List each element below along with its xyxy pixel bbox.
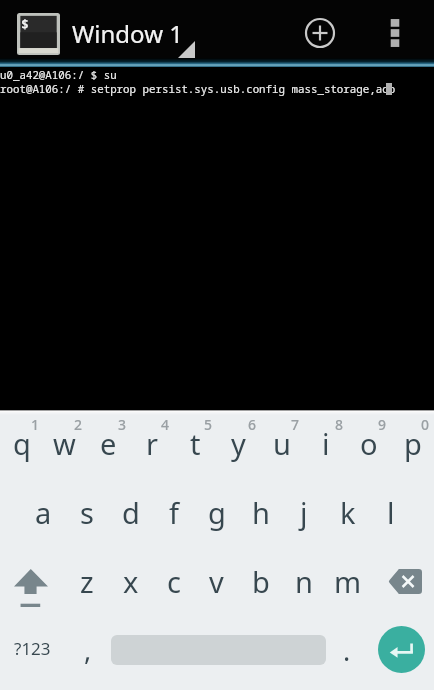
button[interactable]: b [239,554,282,609]
staticText: s [80,493,94,532]
button[interactable]: s [65,485,108,540]
staticText: a [35,493,52,532]
button[interactable]: p [391,416,434,471]
button[interactable]: u [260,416,303,471]
button[interactable]: e [87,416,130,471]
staticText: 0 [421,415,430,434]
staticText: t [190,424,201,463]
staticText: g [208,493,226,532]
staticText: o [360,424,378,463]
staticText: v [209,562,224,601]
staticText: j [300,493,308,532]
staticText: 8 [335,415,344,434]
button[interactable]: . [328,623,366,690]
staticText: c [167,562,181,601]
button[interactable]: o [347,416,390,471]
staticText: 1 [31,415,40,434]
staticText: k [340,493,356,532]
staticText: e [100,424,117,463]
staticText: f [169,493,179,532]
staticText: ?123 [14,637,51,660]
button[interactable]: y [217,416,260,471]
staticText: q [13,424,31,463]
button[interactable]: c [152,554,195,609]
button[interactable]: More options [371,9,419,57]
staticText: 5 [204,415,213,434]
staticText: 6 [248,415,257,434]
button[interactable]: t [174,416,217,471]
staticText: 4 [161,415,170,434]
staticText: h [252,493,270,532]
button[interactable]: v [195,554,238,609]
button[interactable]: j [282,485,325,540]
button[interactable]: d [109,485,152,540]
staticText: z [80,562,94,601]
staticText: , [84,631,92,668]
button[interactable]: , [65,623,108,690]
staticText: y [231,424,246,463]
button[interactable]: l [369,485,412,540]
button[interactable]: z [65,554,108,609]
staticText: . [343,632,351,669]
button[interactable]: ?123 [0,623,65,690]
staticText: d [122,493,140,532]
staticText: 7 [291,415,300,434]
button[interactable]: w [43,416,86,471]
staticText: 3 [118,415,127,434]
staticText: r [146,424,158,463]
staticText: n [295,562,313,601]
button[interactable]: Space [108,623,328,690]
staticText: l [387,493,395,532]
staticText: root@A106:/ # setprop persist.sys.usb.co… [0,81,396,96]
button[interactable]: Backspace [369,554,434,623]
button[interactable]: x [109,554,152,609]
staticText: 9 [378,415,387,434]
staticText: w [53,424,76,463]
button[interactable]: m [326,554,369,609]
staticText: Window 1 [72,17,183,50]
button[interactable]: q [0,416,43,471]
staticText: p [404,424,422,463]
button[interactable]: a [22,485,65,540]
button[interactable]: Shift [0,554,65,623]
button[interactable]: f [152,485,195,540]
button[interactable]: n [282,554,325,609]
button[interactable]: New window [296,9,344,57]
staticText: m [334,562,362,601]
button[interactable]: r [130,416,173,471]
button[interactable]: h [239,485,282,540]
staticText: b [252,562,270,601]
staticText: 2 [74,415,83,434]
staticText: u0_a42@A106:/ $ su [0,67,117,82]
button[interactable]: g [195,485,238,540]
button[interactable]: i [304,416,347,471]
button[interactable]: k [326,485,369,540]
button[interactable]: Enter [366,623,434,690]
staticText: i [322,424,330,463]
staticText: x [123,562,139,601]
staticText: u [273,424,291,463]
staticText: $ [21,15,29,33]
